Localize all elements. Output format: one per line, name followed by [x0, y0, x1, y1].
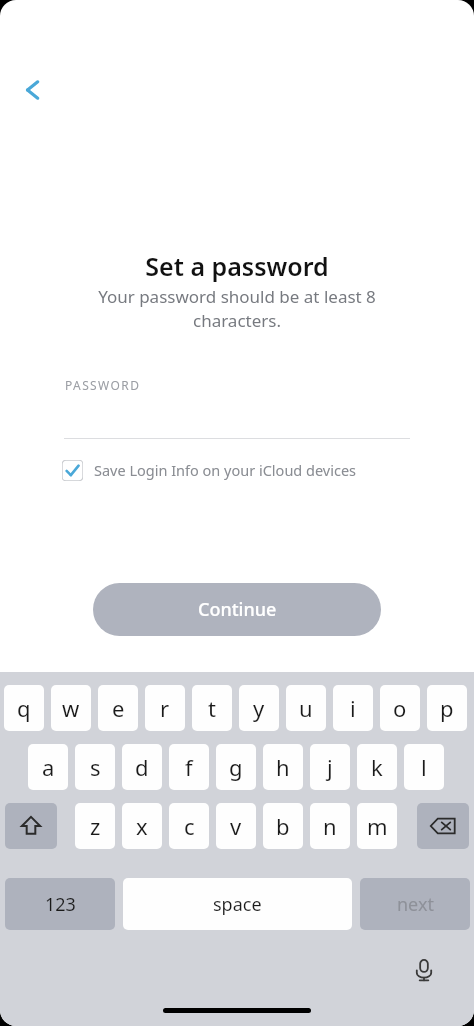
button[interactable]: w: [51, 685, 91, 731]
staticText: u: [299, 693, 313, 723]
button[interactable]: n: [310, 803, 350, 849]
staticText: n: [323, 811, 337, 841]
staticText: Save Login Info on your iCloud devices: [94, 460, 357, 480]
staticText: m: [367, 811, 388, 841]
button[interactable]: p: [427, 685, 467, 731]
staticText: z: [90, 811, 101, 841]
button[interactable]: Dictation: [404, 950, 444, 990]
button[interactable]: o: [380, 685, 420, 731]
staticText: e: [112, 693, 125, 723]
button[interactable]: i: [333, 685, 373, 731]
button[interactable]: h: [263, 744, 303, 790]
staticText: 123: [45, 892, 76, 917]
button[interactable]: Continue: [93, 583, 381, 636]
button[interactable]: e: [98, 685, 138, 731]
button[interactable]: q: [4, 685, 44, 731]
staticText: h: [276, 752, 290, 782]
button[interactable]: l: [404, 744, 444, 790]
button[interactable]: d: [122, 744, 162, 790]
staticText: c: [184, 811, 195, 841]
button[interactable]: Save Login Info on your iCloud devices: [62, 456, 357, 484]
staticText: x: [136, 811, 148, 841]
staticText: b: [276, 811, 290, 841]
button[interactable]: 123: [5, 878, 115, 930]
button[interactable]: space: [123, 878, 352, 930]
staticText: p: [440, 693, 454, 723]
button[interactable]: Shift: [5, 803, 57, 849]
button[interactable]: Backspace: [417, 803, 469, 849]
staticText: f: [185, 752, 193, 782]
staticText: k: [371, 752, 383, 782]
button[interactable]: m: [357, 803, 397, 849]
button[interactable]: z: [75, 803, 115, 849]
button[interactable]: b: [263, 803, 303, 849]
button[interactable]: j: [310, 744, 350, 790]
staticText: r: [160, 693, 170, 723]
button[interactable]: a: [28, 744, 68, 790]
button[interactable]: k: [357, 744, 397, 790]
button[interactable]: Back: [10, 70, 50, 110]
staticText: next: [397, 892, 434, 917]
button[interactable]: r: [145, 685, 185, 731]
button[interactable]: t: [192, 685, 232, 731]
staticText: v: [230, 811, 242, 841]
staticText: a: [42, 752, 55, 782]
staticText: t: [208, 693, 216, 723]
staticText: w: [62, 693, 80, 723]
staticText: PASSWORD: [65, 377, 141, 393]
button[interactable]: y: [239, 685, 279, 731]
staticText: o: [393, 693, 407, 723]
button[interactable]: next: [360, 878, 470, 930]
button[interactable]: x: [122, 803, 162, 849]
staticText: Continue: [198, 597, 277, 622]
staticText: j: [327, 752, 333, 782]
button[interactable]: f: [169, 744, 209, 790]
staticText: d: [135, 752, 149, 782]
staticText: space: [213, 892, 262, 917]
staticText: Set a password: [145, 249, 329, 283]
staticText: Your password should be at least 8 chara…: [80, 285, 394, 332]
button[interactable]: s: [75, 744, 115, 790]
button[interactable]: u: [286, 685, 326, 731]
button[interactable]: c: [169, 803, 209, 849]
staticText: i: [350, 693, 356, 723]
button[interactable]: g: [216, 744, 256, 790]
staticText: g: [229, 752, 243, 782]
staticText: y: [253, 693, 265, 723]
staticText: l: [421, 752, 427, 782]
staticText: s: [90, 752, 101, 782]
staticText: q: [17, 693, 31, 723]
button[interactable]: v: [216, 803, 256, 849]
